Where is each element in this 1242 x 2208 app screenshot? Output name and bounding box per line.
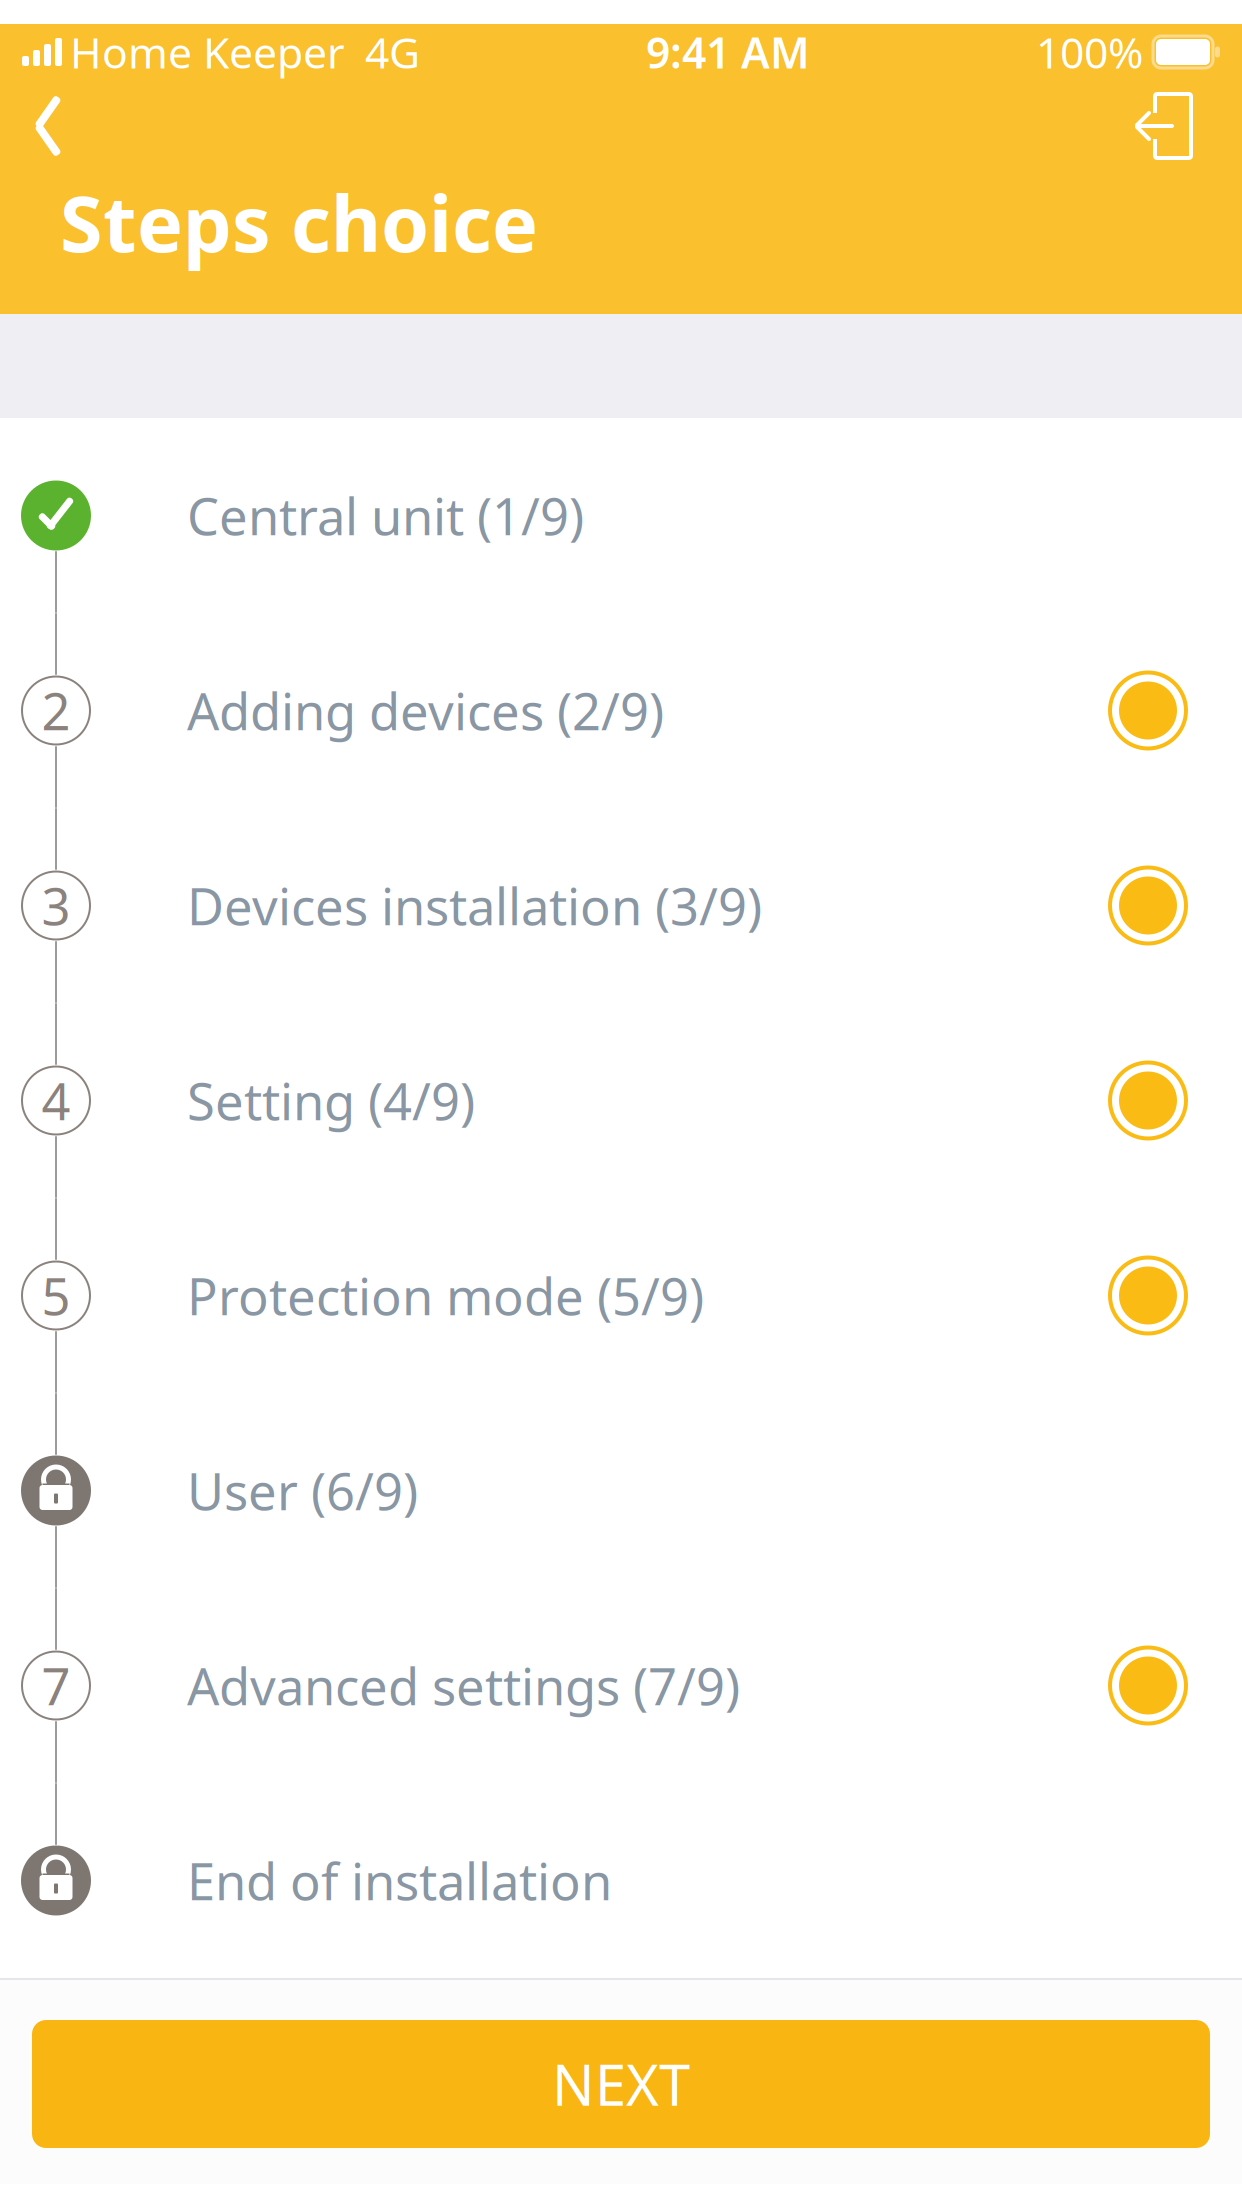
button[interactable]: NEXT [32, 2020, 1210, 2148]
staticText: 5 [41, 1262, 70, 1329]
staticText: 100% [1036, 24, 1143, 80]
button[interactable]: 4 [0, 1003, 1242, 1198]
button[interactable]: End of installation [0, 1783, 1242, 1978]
staticText: NEXT [552, 2047, 690, 2121]
button[interactable]: 3 [0, 808, 1242, 1003]
staticText: Steps choice [60, 171, 538, 273]
button[interactable]: 7 [0, 1588, 1242, 1783]
button[interactable]: 2 [0, 613, 1242, 808]
staticText: Central unit (1/9) [187, 482, 584, 549]
button[interactable]: Log out [1124, 90, 1242, 162]
button[interactable]: Central unit (1/9) [0, 418, 1242, 613]
staticText: 9:41 AM [646, 24, 810, 80]
staticText: 3 [41, 872, 70, 939]
staticText: Adding devices (2/9) [187, 677, 664, 744]
staticText: Advanced settings (7/9) [187, 1652, 740, 1719]
staticText: Devices installation (3/9) [187, 872, 762, 939]
staticText: Protection mode (5/9) [187, 1262, 704, 1329]
staticText: Home Keeper [70, 24, 345, 80]
staticText: End of installation [187, 1847, 612, 1914]
staticText: Setting (4/9) [187, 1067, 475, 1134]
staticText: 2 [41, 677, 70, 744]
staticText: 4 [41, 1067, 70, 1134]
button[interactable]: User (6/9) [0, 1393, 1242, 1588]
staticText: 4G [365, 24, 420, 80]
staticText: 7 [41, 1652, 70, 1719]
button[interactable]: 5 [0, 1198, 1242, 1393]
button[interactable]: Back [0, 83, 68, 169]
staticText: User (6/9) [187, 1457, 418, 1524]
